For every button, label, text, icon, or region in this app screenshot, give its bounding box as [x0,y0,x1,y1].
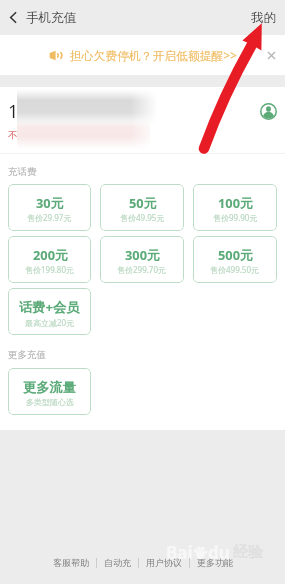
staticText: 售价499.50元 [210,264,260,275]
staticText: 最高立减20元 [25,317,75,328]
staticText: 更多充值 [8,349,46,361]
staticText: 售价99.90元 [213,212,258,223]
button[interactable]: 我的 [242,0,285,35]
button[interactable]: 用户协议 [139,553,189,572]
staticText: Bai [166,541,193,564]
staticText: 充话费 [8,166,37,178]
staticText: 30元 [36,194,64,211]
staticText: 1 [8,99,19,124]
button[interactable]: Back [0,0,26,35]
staticText: 500元 [218,246,253,263]
staticText: 客服帮助 [53,557,89,568]
staticText: 300元 [125,246,160,263]
button[interactable]: 担心欠费停机？开启低额提醒>> [49,47,237,63]
staticText: 售价29.97元 [27,212,72,223]
staticText: 更多流量 [23,379,76,396]
button[interactable]: 更多流量 [8,368,91,415]
staticText: 我的 [251,10,276,26]
staticText: 售价49.95元 [120,212,165,223]
staticText: 200元 [33,246,68,263]
staticText: 50元 [129,194,157,211]
staticText: 自动充 [104,557,131,568]
button[interactable]: 自动充 [97,553,138,572]
staticText: 话费+会员 [19,298,80,316]
button[interactable]: 100元 [193,184,277,231]
button[interactable]: Close banner [262,46,280,64]
staticText: 不 [8,129,18,141]
button[interactable]: 话费+会员 [8,288,91,335]
staticText: 更多功能 [197,557,233,568]
button[interactable]: 客服帮助 [46,553,96,572]
staticText: 售价199.80元 [25,264,75,275]
staticText: 售价299.70元 [117,264,167,275]
staticText: du [208,541,230,564]
button[interactable]: 500元 [193,236,277,283]
staticText: 经验 [233,543,263,562]
button[interactable]: 更多功能 [190,553,240,572]
staticText: 手机充值 [26,10,77,26]
staticText: 多类型随心选 [26,397,74,407]
button[interactable]: Contacts [257,100,279,122]
staticText: 用户协议 [146,557,182,568]
button[interactable]: 200元 [8,236,91,283]
button[interactable]: 30元 [8,184,91,231]
staticText: 100元 [218,194,253,211]
staticText: 担心欠费停机？开启低额提醒>> [70,47,237,63]
button[interactable]: 50元 [100,184,184,231]
button[interactable]: 300元 [100,236,184,283]
